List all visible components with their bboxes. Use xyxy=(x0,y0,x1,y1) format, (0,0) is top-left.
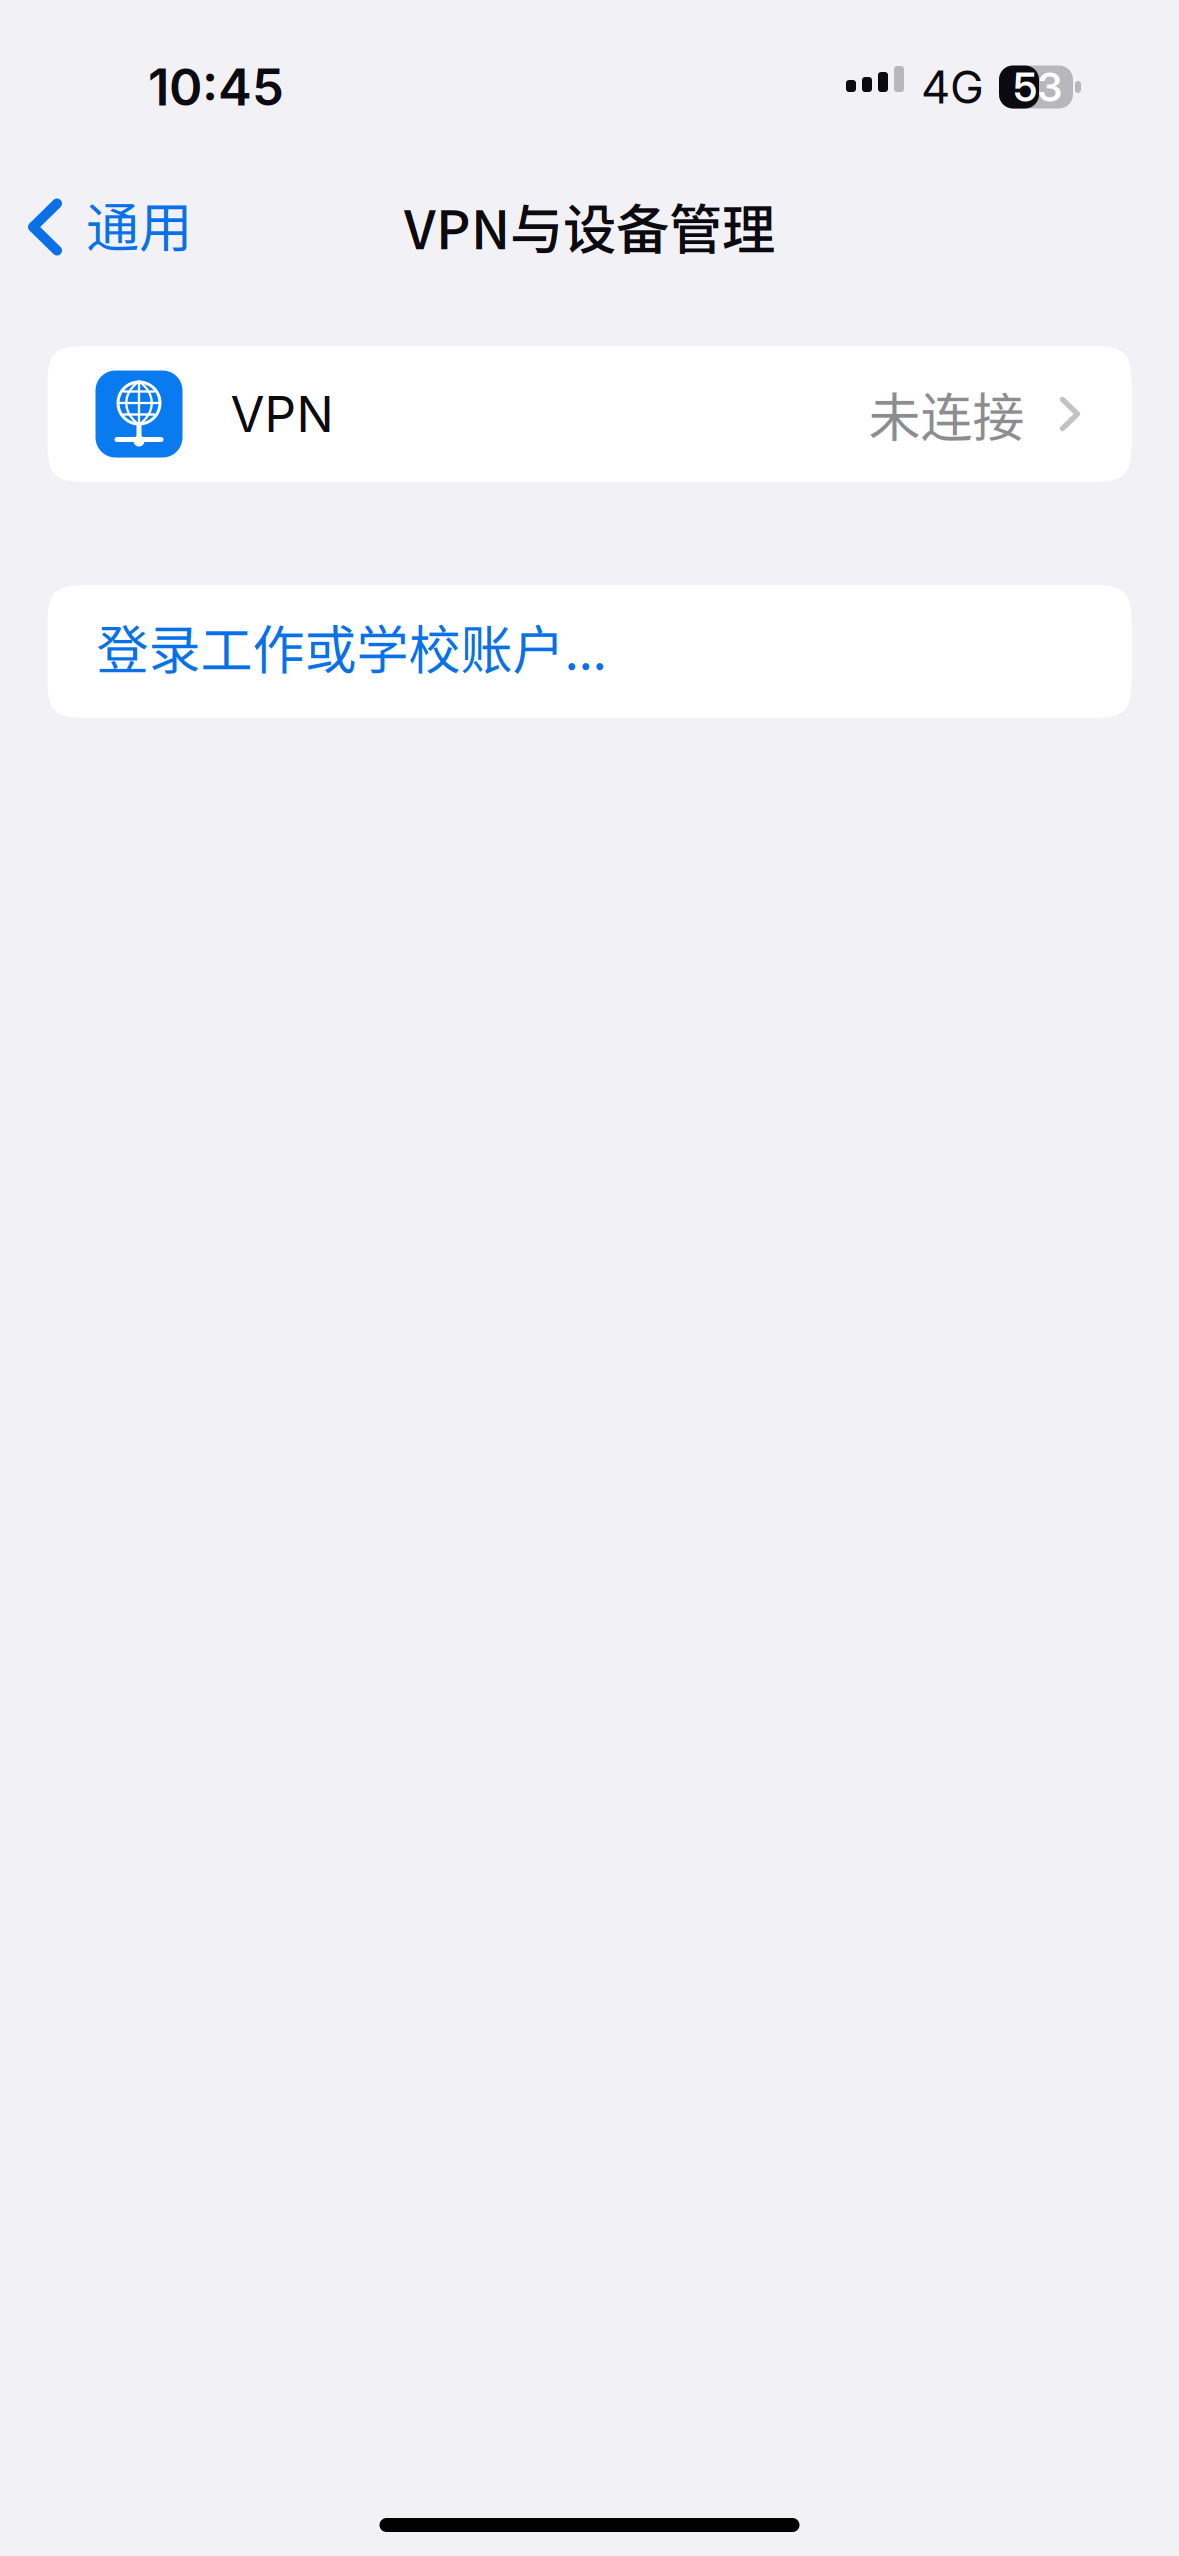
staticText: 4G xyxy=(921,60,984,114)
button[interactable]: VPN xyxy=(47,346,1131,482)
staticText: 登录工作或学校账户... xyxy=(96,609,606,684)
staticText: 53 xyxy=(1013,63,1062,111)
staticText: VPN与设备管理 xyxy=(404,187,775,265)
staticText: 未连接 xyxy=(868,376,1024,452)
staticText: 10:45 xyxy=(148,56,284,118)
button[interactable]: 登录工作或学校账户... xyxy=(47,585,1131,718)
button[interactable]: 通用 xyxy=(0,191,216,261)
staticText: 通用 xyxy=(86,185,192,263)
staticText: VPN xyxy=(230,384,333,444)
